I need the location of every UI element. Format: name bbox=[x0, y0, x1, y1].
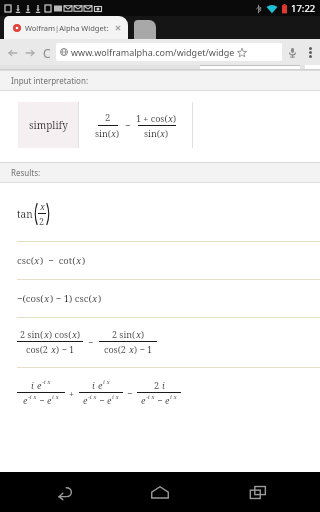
staticText: − bbox=[88, 336, 94, 348]
button[interactable]: More options bbox=[302, 44, 318, 60]
staticText: 2 sin( bbox=[20, 328, 44, 340]
staticText: 2 bbox=[105, 111, 111, 124]
staticText: ) − 1 bbox=[56, 343, 75, 355]
staticText: x bbox=[168, 112, 173, 124]
button[interactable]: Back bbox=[34, 472, 90, 512]
staticText: www.wolframalpha.com/widget/widge bbox=[71, 46, 235, 58]
button[interactable]: Forward bbox=[21, 44, 38, 61]
staticText: 17:22 bbox=[291, 2, 316, 15]
staticText: ) bbox=[141, 328, 145, 340]
staticText: ) − 1 bbox=[134, 343, 153, 355]
staticText: C bbox=[43, 45, 51, 61]
staticText: x bbox=[129, 343, 134, 355]
staticText: −(cos( bbox=[17, 292, 44, 305]
staticText: − bbox=[37, 394, 47, 406]
staticText: 2 bbox=[154, 379, 162, 391]
staticText: e bbox=[98, 379, 103, 391]
staticText: ) bbox=[165, 127, 169, 139]
button[interactable]: Back bbox=[4, 44, 21, 61]
staticText: i bbox=[92, 379, 98, 391]
staticText: e bbox=[47, 394, 52, 406]
staticText: x bbox=[40, 200, 45, 212]
staticText: x bbox=[72, 328, 77, 340]
staticText: − bbox=[155, 394, 165, 406]
staticText: e bbox=[23, 394, 28, 406]
staticText: 2 sin( bbox=[112, 328, 136, 340]
staticText: cos(2 bbox=[26, 343, 51, 355]
staticText: e bbox=[107, 394, 112, 406]
staticText: x bbox=[76, 254, 82, 267]
staticText: − bbox=[127, 387, 133, 399]
staticText: x bbox=[92, 292, 98, 305]
staticText: i x bbox=[112, 393, 119, 401]
staticText: simplify bbox=[29, 118, 68, 132]
staticText: ) bbox=[98, 292, 102, 305]
staticText: i x bbox=[52, 393, 59, 401]
staticText: Wolfram|Alpha Widget: bbox=[25, 23, 109, 33]
staticText: ) bbox=[173, 112, 177, 124]
button[interactable] bbox=[134, 20, 156, 39]
staticText: ) cos( bbox=[49, 328, 72, 340]
staticText: e bbox=[83, 394, 88, 406]
staticText: ) bbox=[77, 328, 81, 340]
button[interactable]: Close tab bbox=[113, 23, 123, 33]
button[interactable]: Wolfram|Alpha Widget: bbox=[4, 16, 128, 39]
staticText: x bbox=[111, 127, 116, 139]
staticText: −i x bbox=[28, 393, 37, 401]
button[interactable]: www.wolframalpha.com/widget/widge bbox=[56, 43, 282, 61]
staticText: i x bbox=[103, 378, 110, 386]
staticText: ) bbox=[82, 254, 86, 267]
staticText: 1 + cos( bbox=[136, 112, 168, 124]
staticText: + bbox=[69, 387, 75, 399]
staticText: −i x bbox=[88, 393, 97, 401]
staticText: 2 bbox=[39, 215, 45, 227]
button[interactable]: Recent apps bbox=[230, 472, 286, 512]
staticText: −i x bbox=[146, 393, 155, 401]
staticText: cos(2 bbox=[104, 343, 129, 355]
staticText: ) − cot( bbox=[40, 254, 76, 267]
staticText: i bbox=[162, 379, 165, 391]
staticText: ) − 1) csc( bbox=[50, 292, 92, 305]
staticText: e bbox=[37, 379, 42, 391]
staticText: x bbox=[160, 127, 165, 139]
staticText: sin( bbox=[95, 127, 111, 139]
staticText: e bbox=[141, 394, 146, 406]
staticText: Input interpretation: bbox=[11, 75, 89, 86]
staticText: i x bbox=[170, 393, 177, 401]
staticText: x bbox=[136, 328, 141, 340]
staticText: csc( bbox=[17, 254, 34, 267]
staticText: x bbox=[44, 292, 50, 305]
staticText: Results: bbox=[11, 167, 41, 178]
button[interactable]: Bookmark bbox=[235, 46, 248, 59]
button[interactable]: Reload bbox=[38, 44, 55, 61]
staticText: e bbox=[165, 394, 170, 406]
staticText: x bbox=[34, 254, 40, 267]
staticText: − bbox=[125, 119, 131, 132]
button[interactable]: Home bbox=[132, 472, 188, 512]
staticText: ) bbox=[116, 127, 120, 139]
staticText: x bbox=[44, 328, 49, 340]
button[interactable]: Voice search bbox=[282, 42, 302, 62]
staticText: − bbox=[97, 394, 107, 406]
staticText: tan bbox=[17, 207, 33, 221]
staticText: x bbox=[51, 343, 56, 355]
staticText: sin( bbox=[144, 127, 160, 139]
staticText: −i x bbox=[42, 378, 51, 386]
staticText: i bbox=[31, 379, 37, 391]
